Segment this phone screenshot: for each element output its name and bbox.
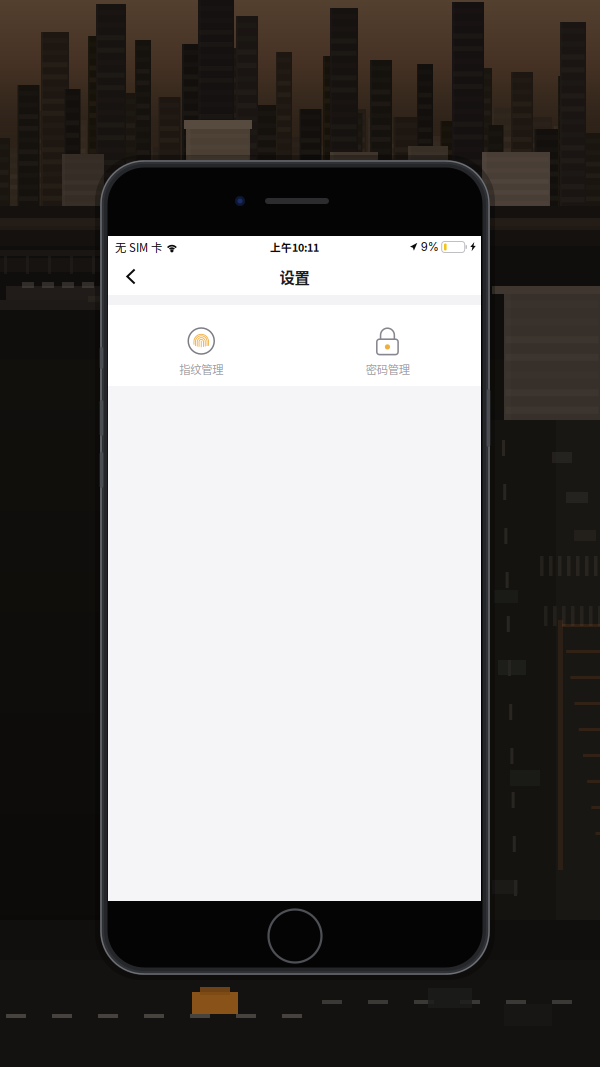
staticText: 设置 xyxy=(279,265,309,288)
staticText: 指纹管理 xyxy=(179,361,223,377)
staticText: 9% xyxy=(421,240,439,254)
button[interactable]: Back xyxy=(112,258,150,295)
staticText: 无 SIM 卡 xyxy=(115,239,162,255)
button[interactable]: 密码管理 xyxy=(294,305,481,386)
staticText: 上午10:11 xyxy=(270,239,319,255)
button[interactable]: 指纹管理 xyxy=(108,305,294,386)
staticText: 密码管理 xyxy=(366,361,410,377)
